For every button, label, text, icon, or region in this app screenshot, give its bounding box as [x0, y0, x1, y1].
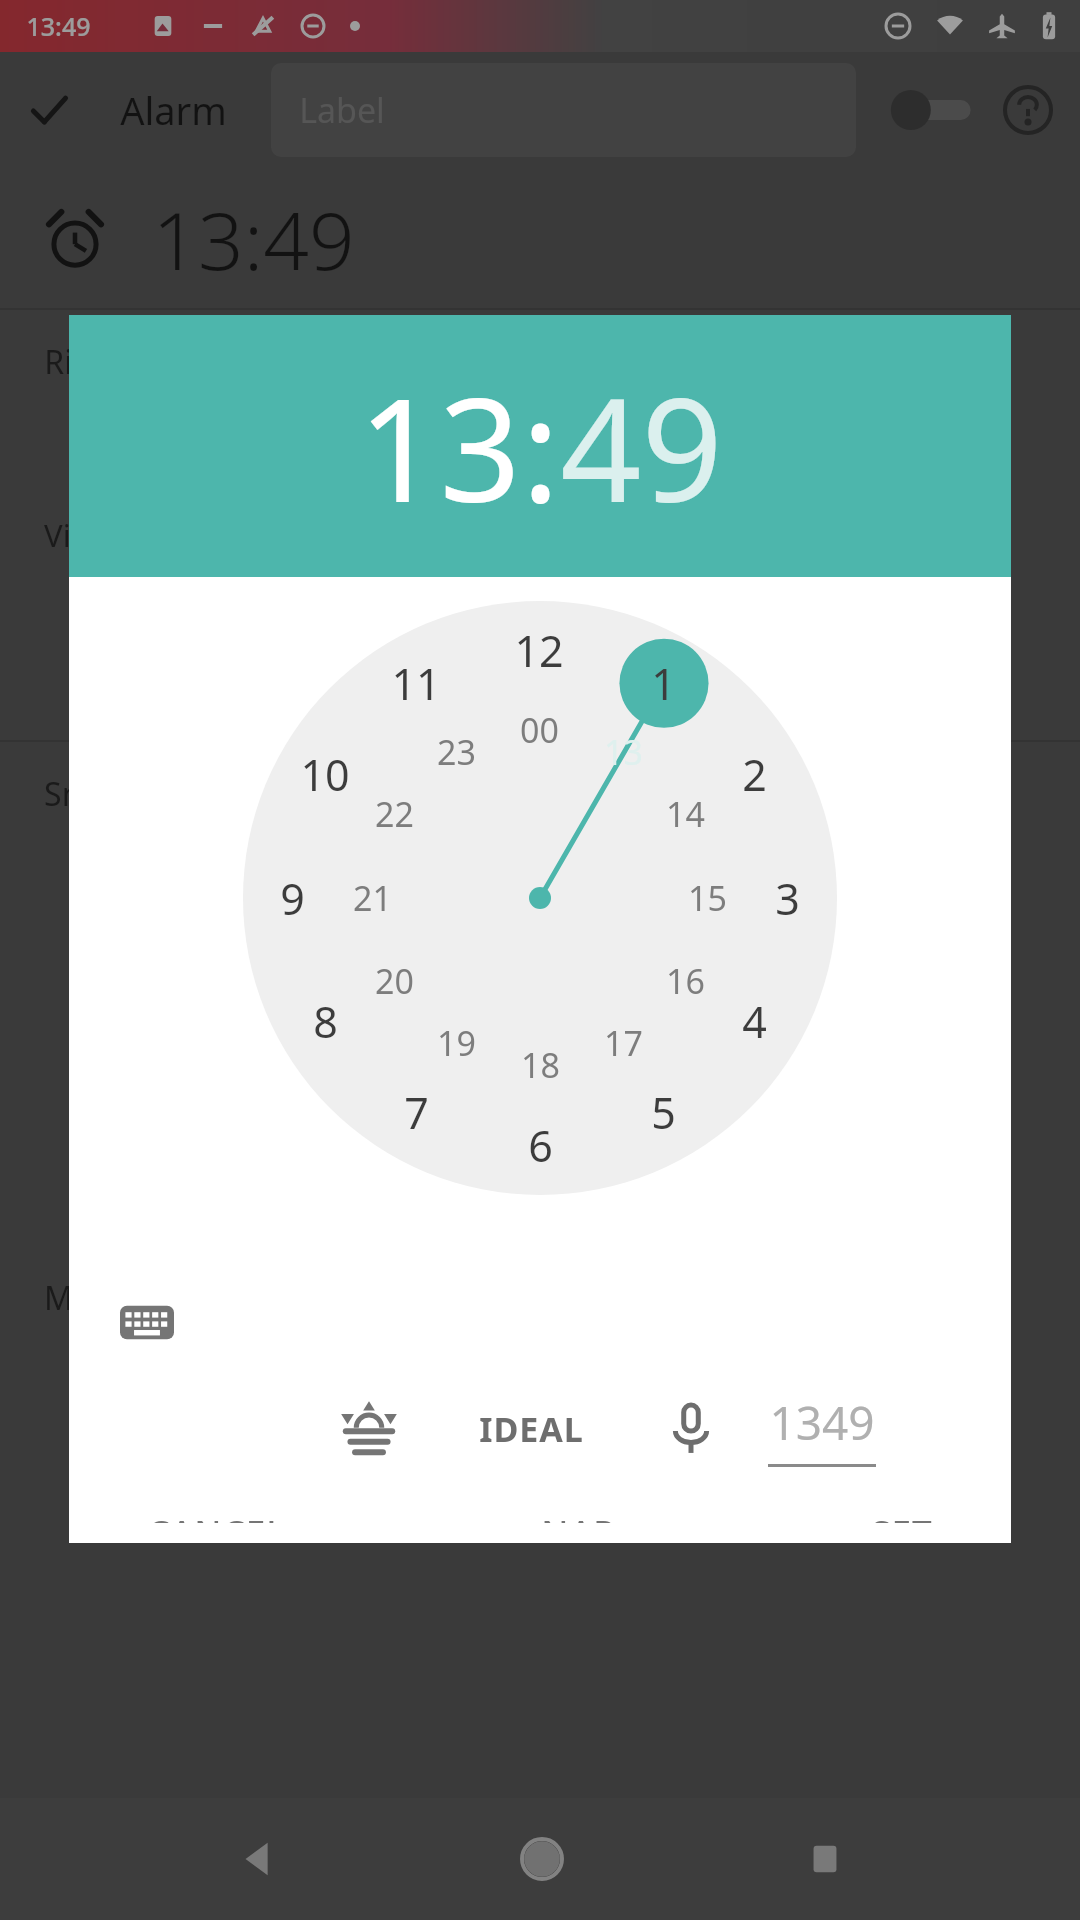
staticText: Vibrate [44, 514, 148, 556]
button[interactable]: 14 [666, 791, 705, 837]
button[interactable]: 22 [375, 791, 414, 837]
button[interactable] [886, 85, 978, 135]
staticText: Ringtone [44, 340, 181, 384]
button[interactable]: 00 [520, 707, 559, 753]
button[interactable]: 49 [560, 350, 723, 543]
button[interactable]: Voice input [660, 1398, 722, 1460]
button[interactable]: 7 [404, 1083, 429, 1142]
button[interactable]: 17 [604, 1020, 643, 1066]
staticText: Alarm [120, 84, 227, 136]
staticText: 1349 [769, 1391, 875, 1454]
button[interactable]: Back [234, 1835, 282, 1883]
button[interactable]: Home [515, 1832, 569, 1886]
button[interactable]: 20 [375, 958, 414, 1004]
button[interactable]: 9 [280, 869, 305, 928]
button[interactable]: 8 [313, 992, 338, 1051]
staticText: NAP [541, 1509, 616, 1523]
staticText: 13:49 [152, 184, 355, 293]
staticText: : [521, 350, 560, 543]
button[interactable]: 13 [604, 729, 643, 775]
button[interactable]: 13 [358, 350, 521, 543]
button[interactable]: 18 [521, 1042, 560, 1088]
button[interactable]: 1 [651, 654, 676, 713]
staticText: CANCEL [147, 1509, 286, 1523]
button[interactable]: SET [871, 1509, 933, 1523]
button[interactable]: Help [1002, 84, 1054, 136]
button[interactable]: Sunrise [335, 1395, 403, 1463]
staticText: 13:49 [26, 9, 91, 43]
button[interactable]: Switch to text input [115, 1291, 179, 1355]
button[interactable]: 19 [437, 1020, 476, 1066]
button[interactable]: NAP [541, 1509, 616, 1523]
staticText: IDEAL [479, 1406, 584, 1452]
button[interactable]: 5 [651, 1083, 676, 1142]
button[interactable]: 15 [688, 875, 727, 921]
button[interactable]: 4 [742, 992, 767, 1051]
button[interactable]: 10 [300, 745, 350, 804]
button[interactable]: 12 [514, 621, 564, 680]
button[interactable]: Confirm [26, 87, 72, 133]
button[interactable]: 6 [528, 1116, 553, 1175]
button[interactable]: 21 [353, 875, 392, 921]
staticText: Snooze [44, 772, 153, 816]
staticText: Miscellaneous [44, 1276, 257, 1320]
button[interactable]: 3 [775, 869, 800, 928]
staticText: Label [299, 87, 385, 133]
button[interactable]: 11 [391, 654, 441, 713]
button[interactable]: CANCEL [147, 1509, 286, 1523]
button[interactable]: IDEAL [479, 1406, 584, 1452]
button[interactable]: 2 [742, 745, 767, 804]
button[interactable]: Recents [803, 1837, 847, 1881]
button[interactable]: 16 [666, 958, 705, 1004]
staticText: SET [871, 1509, 933, 1523]
button[interactable]: 23 [437, 729, 476, 775]
button[interactable]: 1349 [768, 1391, 876, 1467]
